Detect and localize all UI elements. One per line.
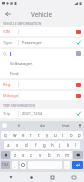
other: Valid — [76, 111, 81, 116]
button[interactable]: that — [54, 121, 77, 130]
button[interactable]: Voice input — [77, 123, 82, 128]
staticText: g — [43, 142, 46, 148]
staticText: Reg. plate — [3, 82, 18, 87]
staticText: . — [66, 163, 68, 168]
button[interactable]: s — [13, 141, 22, 149]
button[interactable]: v — [36, 151, 45, 159]
button[interactable]: l — [72, 141, 80, 149]
button[interactable]: o — [67, 131, 75, 139]
button[interactable]: b — [45, 151, 54, 159]
button[interactable]: h — [48, 141, 56, 149]
staticText: Vehicle — [31, 10, 53, 18]
button[interactable]: m — [63, 151, 72, 159]
staticText: TRIP INFORMATION — [3, 103, 36, 108]
staticText: t — [38, 132, 40, 138]
staticText: j — [59, 142, 61, 148]
staticText: q — [4, 132, 7, 138]
other: Required — [76, 94, 81, 98]
button[interactable]: Keyboard switcher — [63, 172, 84, 182]
staticText: ?123 — [2, 163, 9, 167]
staticText: 2021_1234 — [22, 111, 76, 116]
button[interactable]: y — [43, 131, 51, 139]
button[interactable]: Enter — [72, 161, 83, 169]
staticText: y — [46, 132, 49, 138]
button[interactable]: d — [22, 141, 31, 149]
button[interactable]: w — [10, 131, 19, 139]
button[interactable]: k — [64, 141, 72, 149]
staticText: o — [70, 132, 73, 138]
button[interactable]: e — [19, 131, 27, 139]
staticText: c — [30, 152, 33, 158]
button[interactable]: Back — [0, 172, 21, 182]
staticText: , — [14, 163, 16, 168]
button[interactable]: Reg. plate — [0, 80, 84, 89]
button[interactable]: Google — [2, 123, 7, 128]
button[interactable]: r — [27, 131, 35, 139]
button[interactable]: p — [75, 131, 83, 139]
staticText: VIN — [3, 29, 18, 34]
staticText: n — [57, 152, 60, 158]
button[interactable]: z — [11, 151, 19, 159]
button[interactable]: Mileage — [0, 91, 84, 100]
other: Required — [76, 83, 81, 87]
staticText: p — [78, 132, 81, 138]
button[interactable]: Shift — [1, 151, 10, 159]
button[interactable]: i — [59, 131, 67, 139]
button[interactable]: t — [35, 131, 43, 139]
button[interactable]: Back — [2, 8, 13, 19]
button[interactable]: Emoji — [20, 161, 26, 169]
button[interactable]: Symbols — [1, 161, 10, 169]
button[interactable]: Search — [0, 49, 84, 58]
staticText: d — [25, 142, 28, 148]
button[interactable]: n — [54, 151, 63, 159]
staticText: VEHICLE INFORMATION — [3, 21, 42, 26]
staticText: a — [7, 142, 10, 148]
button[interactable]: , — [12, 161, 18, 169]
button[interactable]: . — [64, 161, 70, 169]
button[interactable]: Volkswagen — [4, 59, 80, 67]
staticText: l — [75, 142, 77, 148]
staticText: s — [16, 142, 19, 148]
staticText: that — [62, 123, 70, 128]
button[interactable]: Type — [0, 38, 84, 47]
button[interactable]: x — [19, 151, 27, 159]
staticText: z — [14, 152, 17, 158]
button[interactable]: Ford — [4, 69, 80, 77]
staticText: r — [30, 132, 32, 138]
staticText: Passenger — [22, 40, 76, 45]
button[interactable]: Recents — [42, 172, 63, 182]
button[interactable]: Trip — [0, 109, 84, 118]
staticText: f — [35, 142, 37, 148]
staticText: Trip — [3, 111, 18, 116]
staticText: k — [67, 142, 70, 148]
button[interactable]: g — [40, 141, 48, 149]
other: Search — [3, 52, 7, 56]
staticText: fi — [18, 123, 21, 128]
staticText: da — [40, 123, 45, 128]
other: Required — [76, 30, 81, 34]
staticText: e — [22, 132, 25, 138]
button[interactable]: c — [27, 151, 36, 159]
staticText: w — [13, 132, 17, 138]
button[interactable]: Backspace — [73, 151, 83, 159]
staticText: h — [51, 142, 54, 148]
staticText: Mileage — [3, 93, 18, 98]
staticText: Ford — [10, 71, 19, 76]
staticText: m — [65, 152, 70, 158]
button[interactable]: q — [1, 131, 10, 139]
button[interactable]: VIN — [0, 27, 84, 36]
button[interactable]: fi — [7, 121, 31, 130]
button[interactable]: j — [56, 141, 64, 149]
button[interactable]: f — [31, 141, 40, 149]
button[interactable]: Home — [21, 172, 42, 182]
button[interactable]: a — [4, 141, 13, 149]
other: Valid — [76, 40, 81, 45]
button[interactable]: Scan — [76, 51, 81, 56]
staticText: x — [22, 152, 25, 158]
button[interactable]: da — [31, 121, 54, 130]
button[interactable]: u — [51, 131, 59, 139]
staticText: b — [48, 152, 51, 158]
staticText: Volkswagen — [10, 61, 33, 66]
staticText: u — [54, 132, 57, 138]
